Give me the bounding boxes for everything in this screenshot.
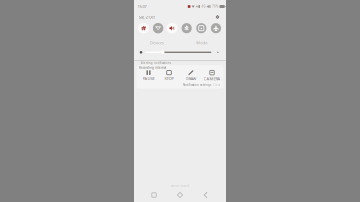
staticText: Recording internal	[139, 66, 166, 69]
staticText: DRAW	[185, 76, 196, 81]
button[interactable]: Bluetooth	[182, 23, 192, 33]
staticText: CAMERA	[203, 76, 220, 81]
button[interactable]: Settings	[213, 13, 221, 21]
staticText: Alerting notifications	[141, 61, 171, 65]
staticText: screen record	[170, 184, 189, 188]
button[interactable]: Aeroplane mode	[211, 23, 221, 33]
staticText: Devices	[150, 40, 164, 45]
staticText: Clear	[213, 83, 220, 87]
button[interactable]: Wi-Fi calling	[138, 23, 149, 33]
button[interactable]: Back	[197, 189, 213, 201]
staticText: Notification settings	[183, 83, 211, 87]
staticText: 4G	[201, 5, 205, 8]
staticText: PAUSE	[142, 76, 154, 81]
staticText: 15:07	[137, 4, 146, 9]
staticText: 78%	[212, 5, 218, 8]
button[interactable]: CAMERA	[202, 70, 222, 82]
button[interactable]: Recent apps	[146, 189, 162, 201]
button[interactable]: Notification settings	[183, 83, 211, 87]
staticText: STOP	[164, 76, 173, 81]
staticText: Sat, 2 Oct	[139, 14, 155, 20]
button[interactable]: Clear	[213, 83, 220, 87]
button[interactable]: Sound	[167, 23, 177, 34]
button[interactable]: Auto-rotate	[196, 23, 206, 33]
button[interactable]: PAUSE	[138, 70, 158, 82]
button[interactable]: DRAW	[181, 70, 201, 82]
button[interactable]: Internet	[153, 23, 163, 33]
button[interactable]: Home	[172, 189, 188, 201]
button[interactable]: STOP	[159, 70, 179, 82]
staticText: Media	[196, 40, 207, 45]
